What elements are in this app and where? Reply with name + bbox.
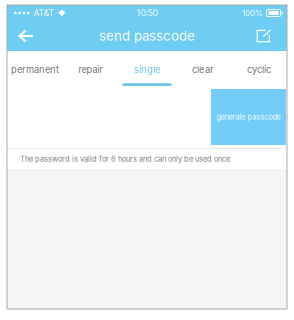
staticText: clear	[192, 64, 214, 75]
button[interactable]: clear	[175, 51, 231, 86]
staticText: repair	[78, 64, 103, 75]
staticText: 100%	[242, 8, 263, 18]
staticText: 10:50	[136, 8, 157, 18]
button[interactable]: repair	[63, 51, 119, 86]
button[interactable]: Compose	[241, 21, 287, 51]
staticText: The password is valid for 6 hours and ca…	[20, 154, 230, 163]
staticText: send passcode	[99, 28, 195, 44]
staticText: single	[134, 64, 160, 75]
button[interactable]: single	[119, 51, 175, 86]
staticText: generate passcode	[216, 113, 280, 121]
button[interactable]: Back	[7, 21, 45, 51]
button[interactable]: permanent	[7, 51, 63, 86]
staticText: cyclic	[247, 64, 271, 75]
button[interactable]: cyclic	[231, 51, 287, 86]
staticText: permanent	[11, 64, 59, 75]
staticText: AT&T	[34, 8, 55, 18]
button[interactable]: generate passcode	[211, 89, 286, 145]
